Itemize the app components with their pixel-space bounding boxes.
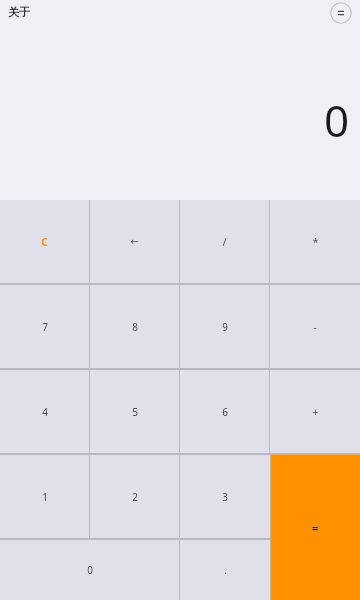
staticText: * (312, 234, 319, 249)
button[interactable]: = (271, 455, 360, 600)
staticText: 9 (222, 320, 228, 334)
button[interactable]: 4 (0, 370, 89, 453)
button[interactable]: * (270, 200, 360, 283)
staticText: 0 (324, 90, 350, 150)
button[interactable]: 7 (0, 285, 89, 368)
staticText: 2 (132, 490, 138, 504)
button[interactable]: 2 (90, 455, 179, 538)
button[interactable]: C (0, 200, 89, 283)
staticText: ← (130, 236, 139, 248)
button[interactable]: 1 (0, 455, 89, 538)
staticText: 1 (42, 490, 48, 504)
staticText: 关于 (8, 5, 30, 19)
staticText: + (312, 404, 319, 419)
button[interactable]: 关于 (8, 5, 30, 19)
button[interactable]: 3 (180, 455, 270, 538)
staticText: 0 (87, 563, 93, 577)
button[interactable]: 8 (90, 285, 179, 368)
button[interactable]: 0 (0, 540, 179, 600)
staticText: . (224, 563, 227, 577)
staticText: 7 (42, 320, 48, 334)
staticText: 5 (132, 405, 138, 419)
staticText: 3 (222, 490, 228, 504)
button[interactable]: 6 (180, 370, 269, 453)
staticText: C (41, 235, 48, 249)
button[interactable]: 5 (90, 370, 179, 453)
staticText: 8 (132, 320, 138, 334)
staticText: / (222, 234, 227, 249)
staticText: 4 (42, 405, 48, 419)
button[interactable]: / (180, 200, 269, 283)
button[interactable]: + (270, 370, 360, 453)
staticText: 6 (222, 405, 228, 419)
button[interactable]: ← (90, 200, 179, 283)
staticText: - (313, 319, 317, 334)
staticText: = (312, 520, 319, 535)
button[interactable]: History (330, 2, 352, 24)
button[interactable]: 9 (180, 285, 269, 368)
